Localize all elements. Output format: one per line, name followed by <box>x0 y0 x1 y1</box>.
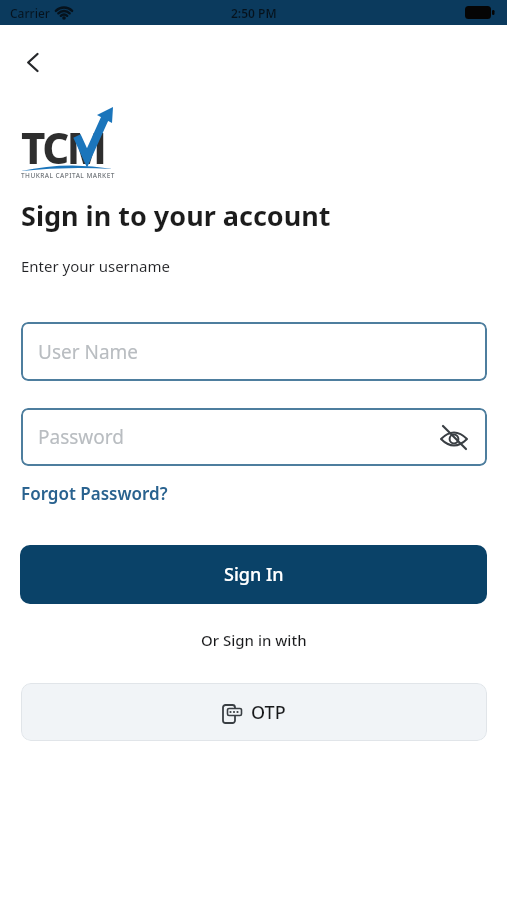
staticText: Carrier <box>10 5 50 21</box>
staticText: Sign In <box>224 562 284 587</box>
button[interactable]: OTP <box>21 683 487 741</box>
button[interactable] <box>16 46 48 78</box>
staticText: Sign in to your account <box>21 197 331 234</box>
staticText: Enter your username <box>21 256 170 276</box>
staticText: Or Sign in with <box>201 630 307 650</box>
button[interactable]: Forgot Password? <box>21 482 168 505</box>
button[interactable]: Sign In <box>20 545 487 604</box>
staticText: TCM <box>21 119 105 176</box>
staticText: THUKRAL CAPITAL MARKET <box>21 171 115 180</box>
staticText: Password <box>38 424 124 450</box>
button[interactable] <box>437 420 471 454</box>
staticText: OTP <box>251 700 286 725</box>
button[interactable]: User Name <box>21 322 487 381</box>
staticText: 2:50 PM <box>231 5 277 21</box>
button[interactable]: Password <box>21 408 487 466</box>
staticText: User Name <box>38 339 139 365</box>
